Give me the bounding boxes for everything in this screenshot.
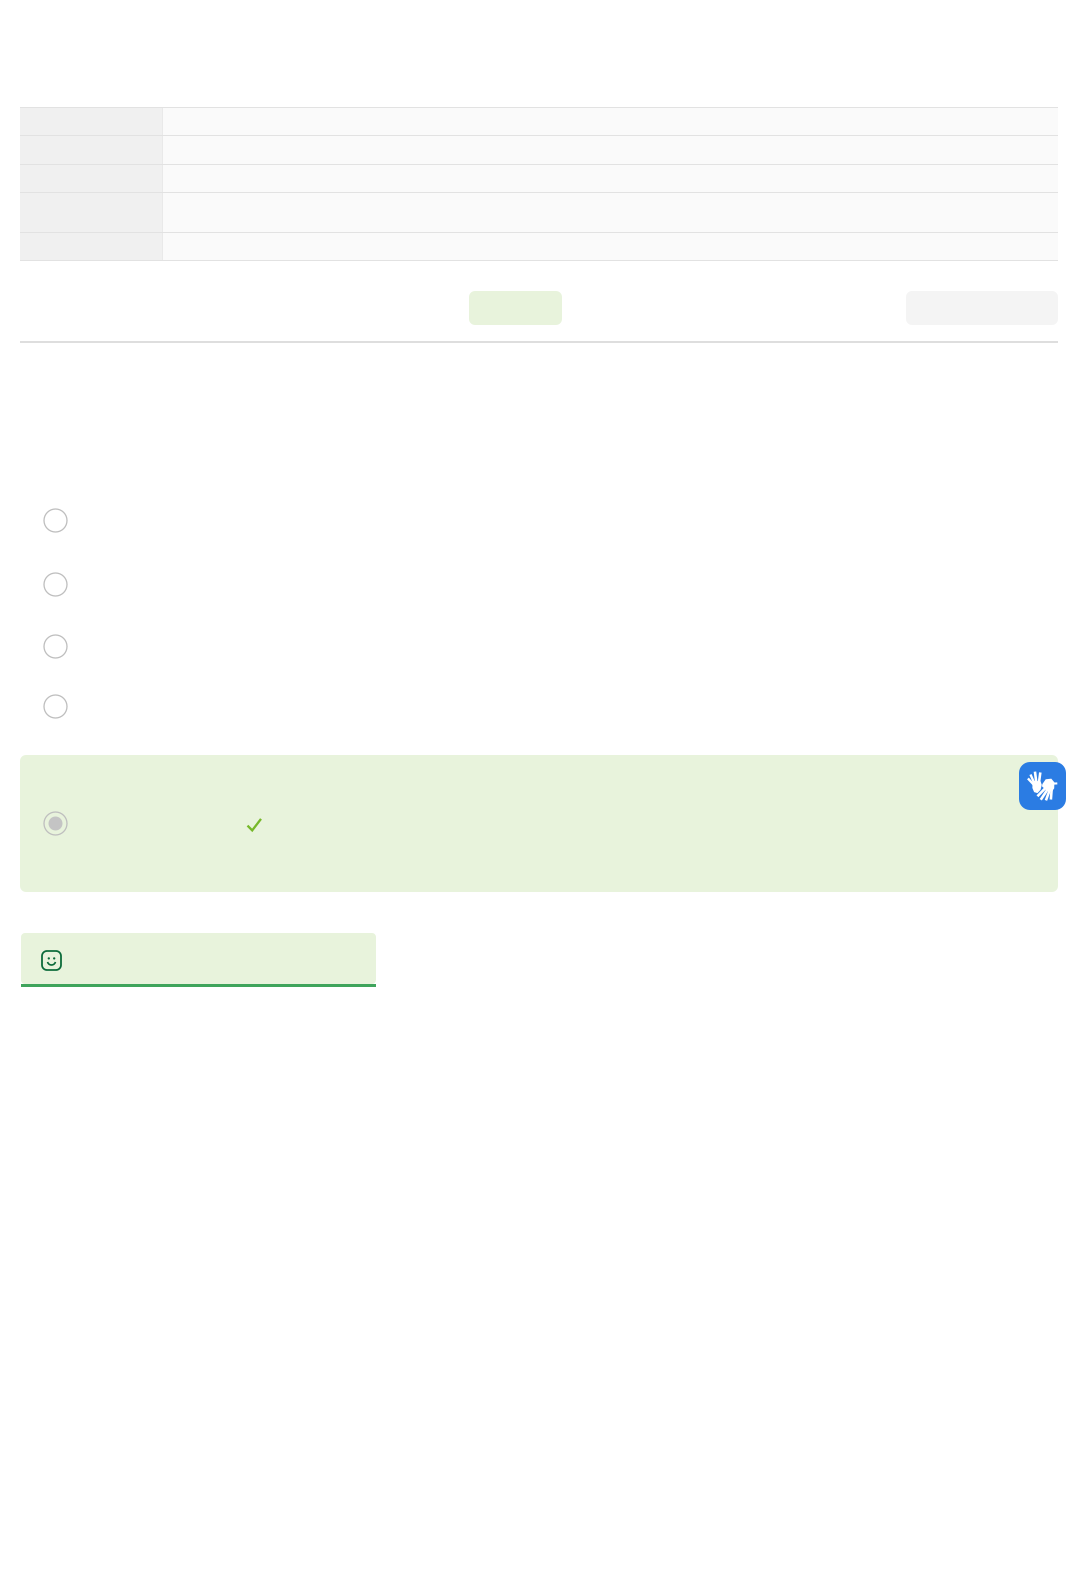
button[interactable]: Add a comment — [21, 933, 376, 987]
button[interactable]: Selected answer, correct — [20, 755, 1058, 892]
button[interactable]: Sign language interpretation — [1019, 762, 1066, 810]
button[interactable]: Check answer — [469, 291, 562, 325]
